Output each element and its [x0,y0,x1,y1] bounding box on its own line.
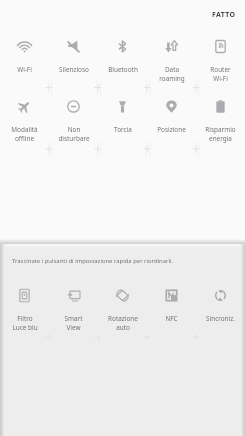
button[interactable]: Modalità offline [0,100,49,142]
staticText: NFC [165,314,178,323]
button[interactable]: Sincroniz. [196,289,245,323]
staticText: Torcia [114,125,132,134]
staticText: Rotazione auto [108,314,138,331]
button[interactable]: NFC [147,289,196,323]
staticText: Risparmio energia [205,125,236,142]
button[interactable]: Bluetooth [98,40,147,74]
button[interactable]: FATTO [198,0,245,25]
button[interactable]: Non disturbare [49,100,98,142]
staticText: Modalità offline [11,125,38,142]
button[interactable]: Silenzioso [49,40,98,74]
staticText: Filtro Luce blu [12,314,38,331]
button[interactable]: Posizione [147,100,196,134]
staticText: Router Wi-Fi [210,65,231,82]
button[interactable]: Filtro Luce blu [0,289,49,331]
staticText: Bluetooth [108,65,138,74]
button[interactable]: Rotazione auto [98,289,147,331]
button[interactable]: Router Wi-Fi [196,40,245,82]
staticText: Data roaming [159,65,185,82]
staticText: Non disturbare [58,125,90,142]
staticText: Silenzioso [59,65,89,74]
button[interactable]: Smart View [49,289,98,331]
button[interactable]: Data roaming [147,40,196,82]
button[interactable]: Torcia [98,100,147,134]
staticText: Trascinate i pulsanti di impostazione ra… [12,257,174,265]
staticText: Smart View [64,314,83,331]
staticText: Wi-Fi [17,65,32,74]
staticText: Posizione [157,125,186,134]
staticText: Sincroniz. [206,314,235,323]
button[interactable]: Risparmio energia [196,100,245,142]
button[interactable]: Wi-Fi [0,40,49,74]
staticText: FATTO [212,10,236,20]
